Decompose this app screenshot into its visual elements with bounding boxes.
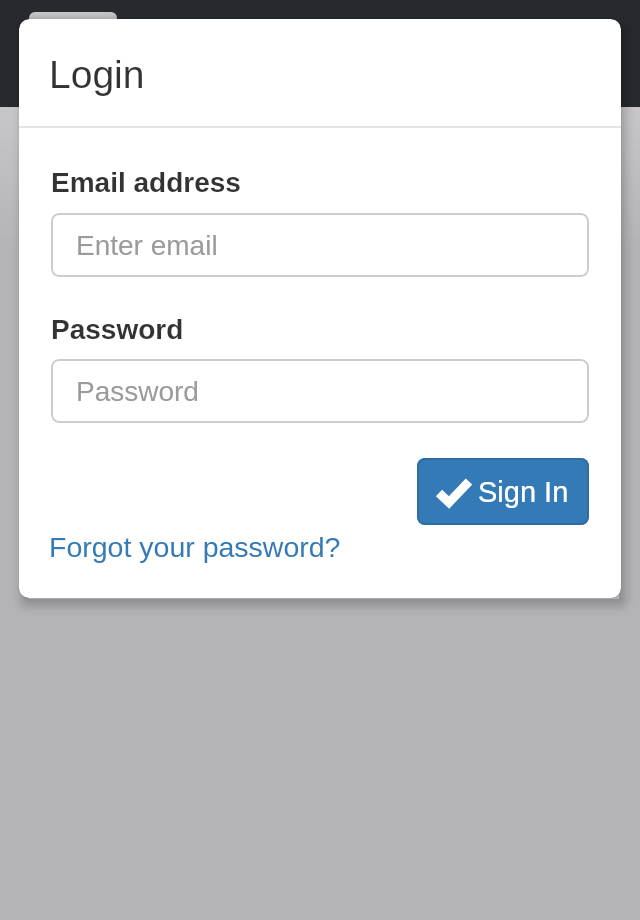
button[interactable]: Password	[51, 359, 589, 423]
staticText: Email address	[51, 167, 241, 198]
button[interactable]	[29, 12, 117, 52]
staticText: Enter email	[76, 230, 218, 261]
staticText: Sign In	[478, 476, 569, 508]
button[interactable]: Enter email	[51, 213, 589, 277]
staticText: Password	[76, 376, 199, 407]
staticText: Login	[49, 53, 145, 97]
button[interactable]: Forgot your password?	[49, 527, 341, 567]
button[interactable]: Sign In	[417, 458, 589, 525]
staticText: Forgot your password?	[49, 531, 341, 563]
staticText: Password	[51, 314, 184, 345]
